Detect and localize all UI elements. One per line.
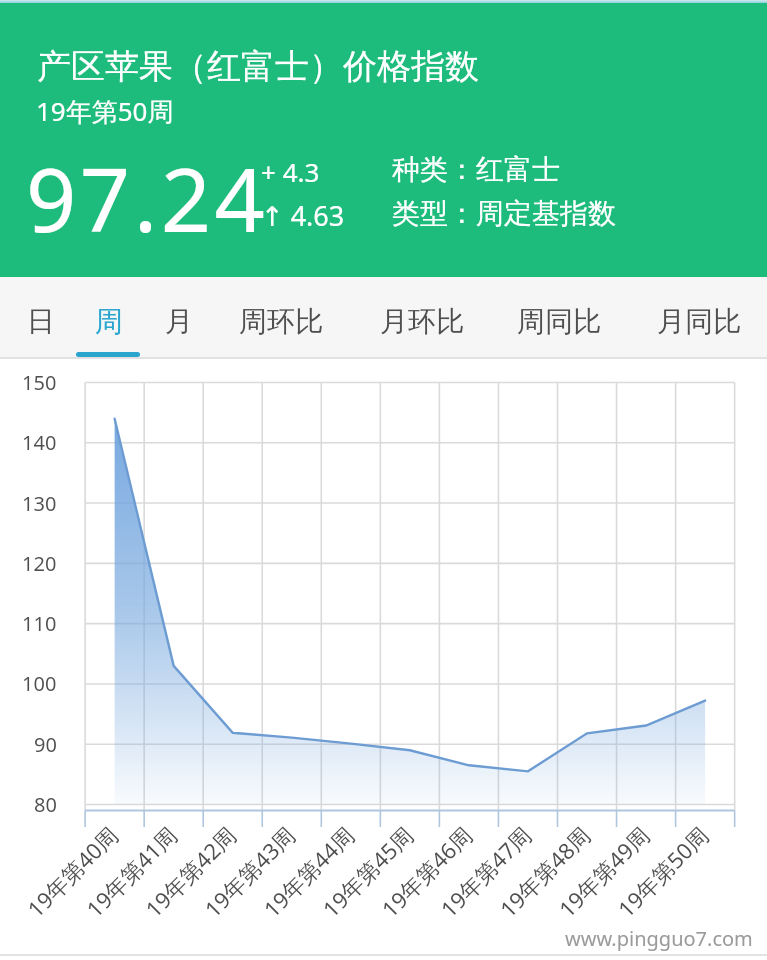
staticText: 产区苹果（红富士）价格指数 <box>37 45 479 88</box>
button[interactable]: 周环比 <box>229 284 333 358</box>
staticText: 周 <box>95 304 123 339</box>
button[interactable]: 周 <box>85 284 133 358</box>
button[interactable]: 月同比 <box>647 284 751 358</box>
staticText: 周环比 <box>239 304 323 339</box>
staticText: 种类：红富士 <box>392 152 560 187</box>
staticText: + 4.3 <box>261 154 320 189</box>
staticText: 日 <box>27 304 55 339</box>
staticText: ↑ 4.63 <box>261 197 345 234</box>
button[interactable]: 日 <box>17 284 65 358</box>
staticText: 月同比 <box>657 304 741 339</box>
button[interactable]: 月 <box>155 284 203 358</box>
staticText: 月 <box>165 304 193 339</box>
button[interactable]: 月环比 <box>370 284 474 358</box>
staticText: 类型：周定基指数 <box>392 196 616 231</box>
staticText: 19年第50周 <box>36 93 174 129</box>
staticText: 月环比 <box>380 304 464 339</box>
button[interactable]: 周同比 <box>507 284 611 358</box>
staticText: 周同比 <box>517 304 601 339</box>
staticText: 97.24 <box>26 138 269 258</box>
